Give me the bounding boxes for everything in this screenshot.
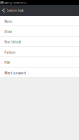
button[interactable]: Face Unlock xyxy=(0,37,79,47)
staticText: Saving screenshot… xyxy=(4,1,28,4)
staticText: Screen lock xyxy=(7,9,24,12)
button[interactable]: Mixed password xyxy=(0,67,79,78)
staticText: Mixed password xyxy=(4,71,26,75)
button[interactable]: Slide xyxy=(0,26,79,37)
staticText: PIN xyxy=(4,61,9,65)
staticText: Face Unlock xyxy=(4,40,20,44)
staticText: Slide xyxy=(4,30,12,34)
button[interactable]: Pattern xyxy=(0,47,79,57)
button[interactable]: PIN xyxy=(0,57,79,67)
button[interactable]: None xyxy=(0,16,79,26)
staticText: None xyxy=(4,20,12,23)
button[interactable]: Back xyxy=(0,5,7,16)
staticText: Pattern xyxy=(4,51,15,54)
